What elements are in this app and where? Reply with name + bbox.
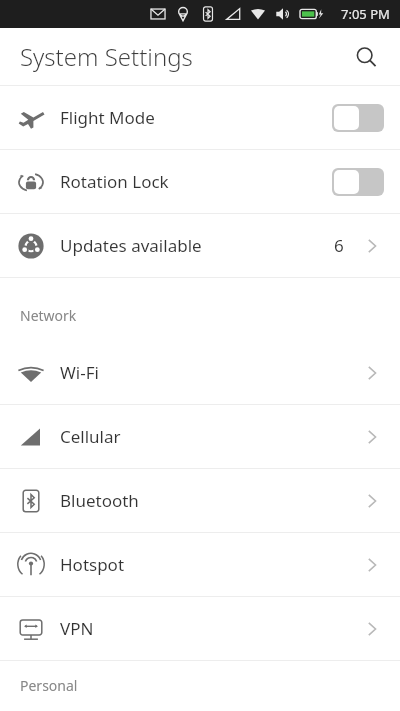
staticText: Personal: [20, 676, 78, 695]
button[interactable]: Toggle: [332, 104, 384, 132]
button[interactable]: Wi-Fi: [0, 341, 400, 404]
staticText: Wi-Fi: [60, 361, 364, 384]
staticText: Hotspot: [60, 553, 364, 576]
staticText: Rotation Lock: [60, 170, 332, 193]
staticText: VPN: [60, 617, 364, 640]
staticText: Bluetooth: [60, 489, 364, 512]
button[interactable]: Updates available: [0, 214, 400, 277]
staticText: System Settings: [20, 40, 193, 73]
staticText: Flight Mode: [60, 106, 332, 129]
staticText: Network: [20, 306, 77, 325]
staticText: 7:05 PM: [341, 5, 390, 23]
button[interactable]: Toggle: [332, 168, 384, 196]
button[interactable]: Flight Mode: [0, 86, 400, 149]
button[interactable]: Search: [346, 37, 386, 77]
button[interactable]: Hotspot: [0, 533, 400, 596]
staticText: 6: [334, 234, 344, 257]
button[interactable]: Rotation Lock: [0, 150, 400, 213]
staticText: Updates available: [60, 234, 334, 257]
button[interactable]: Bluetooth: [0, 469, 400, 532]
button[interactable]: VPN: [0, 597, 400, 660]
button[interactable]: Cellular: [0, 405, 400, 468]
staticText: Cellular: [60, 425, 364, 448]
